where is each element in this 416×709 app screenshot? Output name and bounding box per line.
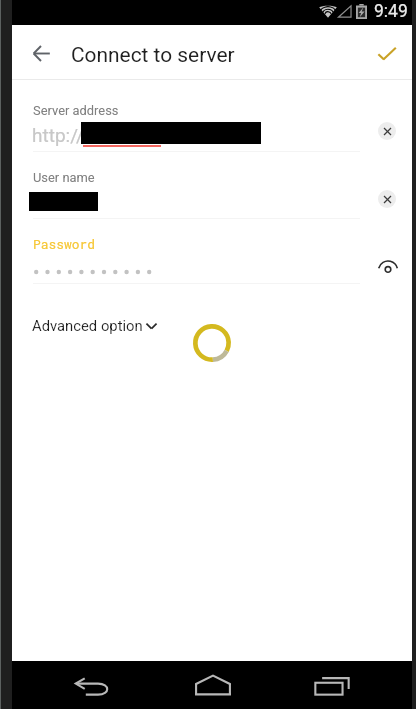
- button[interactable]: Back: [70, 668, 116, 704]
- button[interactable]: Show password: [370, 248, 406, 284]
- staticText: User name: [33, 170, 95, 185]
- button[interactable]: Clear: [369, 181, 405, 217]
- staticText: Advanced option: [32, 317, 143, 334]
- staticText: http://: [32, 124, 84, 146]
- button[interactable]: Advanced option: [32, 317, 157, 334]
- staticText: 9:49: [374, 1, 408, 22]
- button[interactable]: Navigate up: [23, 35, 59, 71]
- button[interactable]: Home: [189, 669, 236, 701]
- staticText: Password: [33, 235, 95, 252]
- button[interactable]: Done: [369, 35, 405, 71]
- staticText: Server address: [33, 103, 119, 118]
- button[interactable]: Clear: [369, 113, 405, 149]
- staticText: Connect to server: [71, 43, 235, 67]
- button[interactable]: Recent apps: [309, 670, 354, 702]
